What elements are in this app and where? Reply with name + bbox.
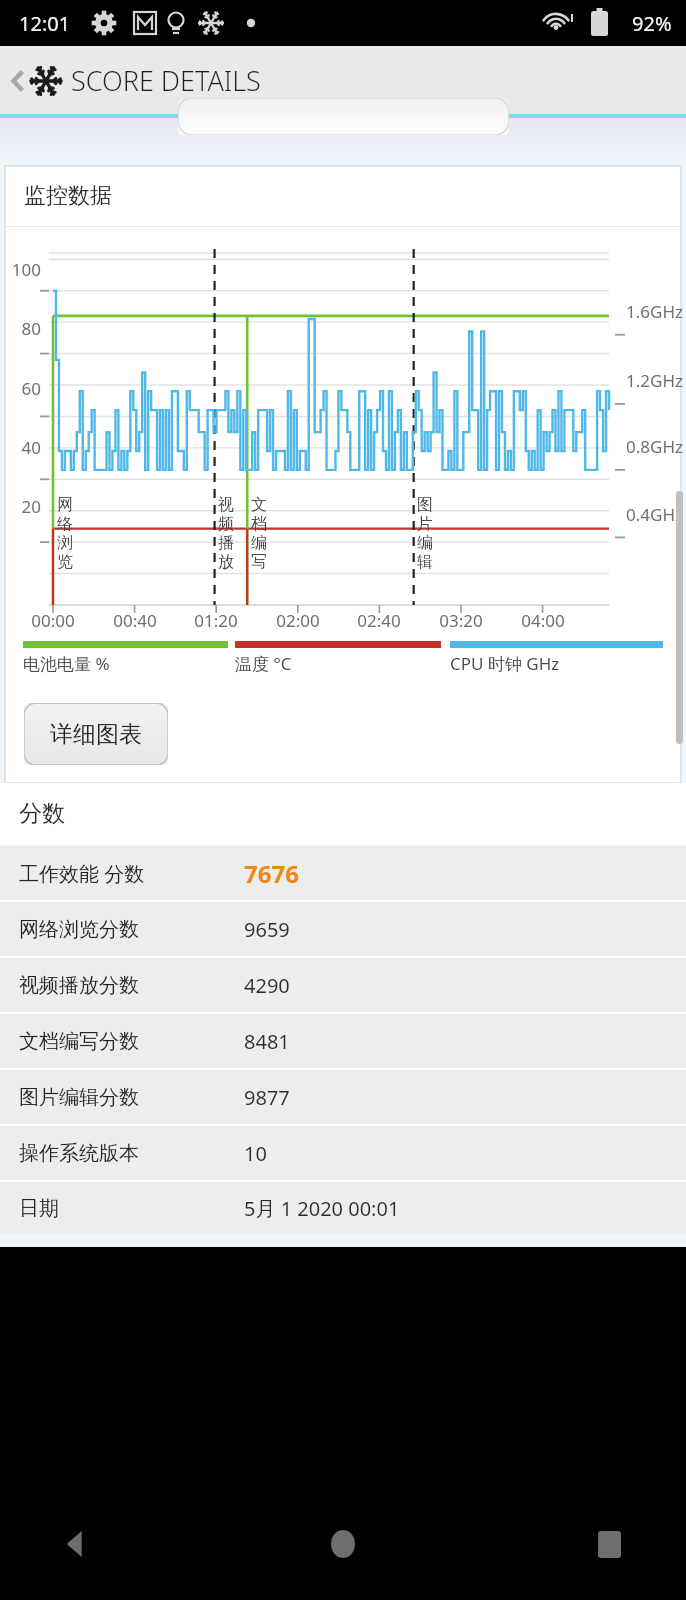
staticText: 100 [11, 258, 41, 281]
staticText: SCORE DETAILS [71, 62, 261, 99]
staticText: 电池电量 % [23, 652, 110, 675]
staticText: 12:01 [19, 10, 71, 37]
button[interactable]: 详细图表 [24, 703, 168, 765]
staticText: 9659 [244, 916, 290, 943]
staticText: 监控数据 [24, 182, 112, 210]
button[interactable]: 文档编写分数 [0, 1014, 686, 1068]
staticText: 01:20 [190, 609, 242, 632]
staticText: 03:20 [435, 609, 487, 632]
button[interactable]: 视频播放分数 [0, 958, 686, 1012]
staticText: 播 [218, 533, 234, 552]
staticText: 工作效能 分数 [19, 860, 244, 887]
staticText: 8481 [244, 1028, 290, 1055]
button[interactable]: 网络浏览分数 [0, 902, 686, 956]
staticText: 写 [251, 552, 267, 571]
staticText: 编 [251, 533, 267, 552]
staticText: 网 [57, 495, 73, 514]
button[interactable]: Recent apps [572, 1507, 646, 1581]
staticText: 80 [11, 317, 41, 340]
staticText: 浏 [57, 533, 73, 552]
staticText: 辑 [417, 552, 433, 571]
staticText: 图片编辑分数 [19, 1085, 244, 1110]
staticText: 9877 [244, 1084, 290, 1111]
staticText: 览 [57, 552, 73, 571]
staticText: 分数 [19, 799, 65, 828]
staticText: 92% [632, 10, 672, 37]
staticText: 1.6GHz [626, 300, 683, 323]
staticText: 视频播放分数 [19, 973, 244, 998]
staticText: 10 [244, 1140, 267, 1167]
staticText: 1.2GHz [626, 369, 683, 392]
button[interactable]: 工作效能 分数 [0, 846, 686, 900]
staticText: 文 [251, 495, 267, 514]
staticText: 00:00 [27, 609, 79, 632]
button[interactable]: Back [40, 1507, 114, 1581]
staticText: 片 [417, 514, 433, 533]
staticText: 操作系统版本 [19, 1141, 244, 1166]
staticText: 视 [218, 495, 234, 514]
staticText: 频 [218, 514, 234, 533]
button[interactable]: 日期 [0, 1182, 686, 1234]
staticText: 4290 [244, 972, 290, 999]
staticText: 文档编写分数 [19, 1029, 244, 1054]
staticText: 02:00 [272, 609, 324, 632]
staticText: 00:40 [109, 609, 161, 632]
staticText: 编 [417, 533, 433, 552]
button[interactable]: 操作系统版本 [0, 1126, 686, 1180]
staticText: 温度 °C [235, 652, 292, 675]
staticText: 络 [57, 514, 73, 533]
staticText: 网络浏览分数 [19, 917, 244, 942]
staticText: 日期 [19, 1196, 244, 1221]
staticText: 02:40 [353, 609, 405, 632]
button[interactable]: Back [0, 56, 267, 105]
staticText: 0.8GHz [626, 435, 683, 458]
staticText: 档 [251, 514, 267, 533]
staticText: CPU 时钟 GHz [450, 652, 560, 675]
staticText: 60 [11, 377, 41, 400]
staticText: 详细图表 [50, 720, 142, 749]
button[interactable]: 图片编辑分数 [0, 1070, 686, 1124]
staticText: 0.4GHz [626, 503, 683, 526]
staticText: 20 [11, 495, 41, 518]
staticText: 04:00 [517, 609, 569, 632]
button[interactable]: Home [306, 1507, 380, 1581]
staticText: 7676 [244, 857, 299, 890]
staticText: 40 [11, 436, 41, 459]
staticText: 5月 1 2020 00:01 [244, 1195, 400, 1222]
staticText: 图 [417, 495, 433, 514]
staticText: 放 [218, 552, 234, 571]
